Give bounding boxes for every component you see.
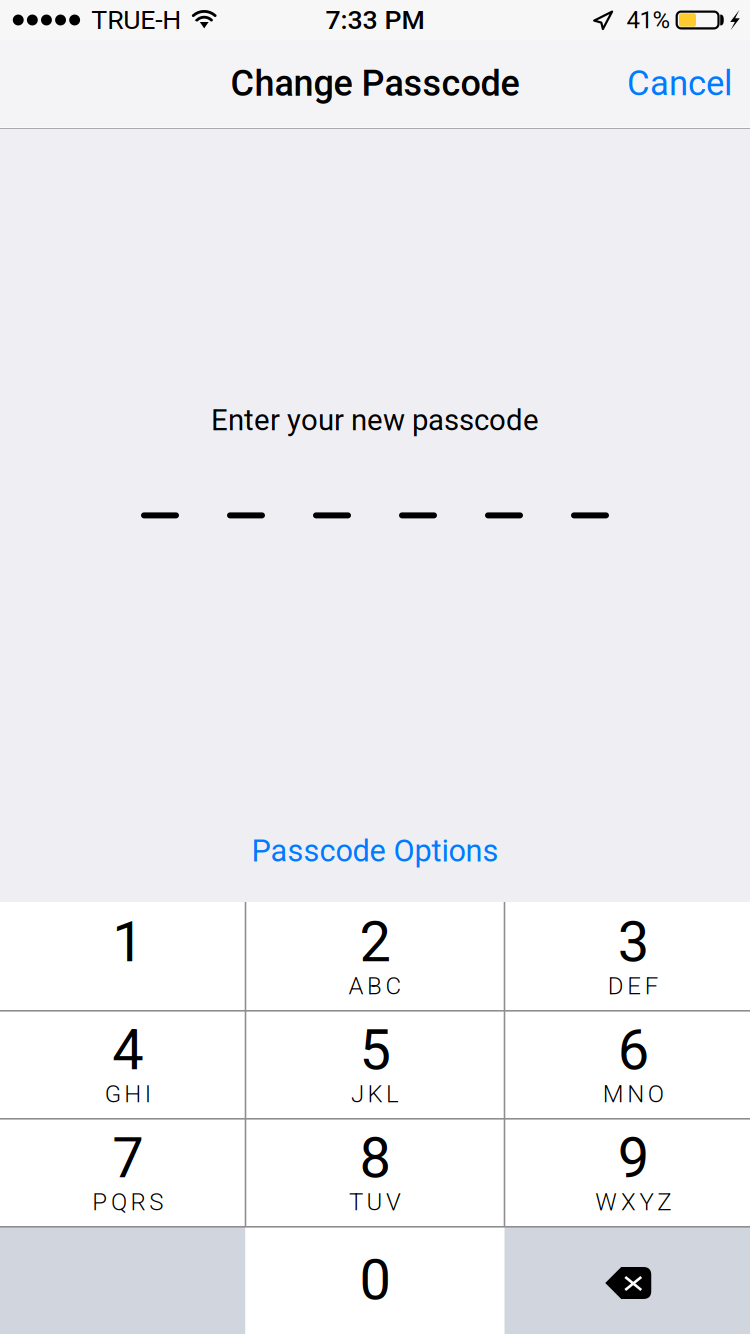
button[interactable]: Delete [504,1226,750,1334]
button[interactable]: 1 [0,902,245,1010]
staticText: R [131,1188,146,1216]
button[interactable]: 5 [245,1010,504,1118]
button[interactable]: 4 [0,1010,245,1118]
staticText: Z [657,1188,671,1216]
staticText: Q [111,1188,127,1216]
button[interactable]: 8 [245,1118,504,1226]
staticText: 8 [359,1125,390,1191]
staticText: Passcode Options [251,833,498,869]
staticText: S [149,1188,163,1216]
staticText: N [627,1080,644,1108]
staticText: 3 [618,909,649,975]
staticText: 41% [627,6,671,34]
staticText: D [608,972,624,1000]
staticText: Y [640,1188,654,1216]
button[interactable]: 2 [245,902,504,1010]
button[interactable]: 0 [245,1226,504,1334]
staticText: V [386,1188,401,1216]
staticText: G [105,1080,121,1108]
staticText: W [595,1188,617,1216]
staticText: 0 [359,1247,390,1313]
staticText: U [366,1188,382,1216]
staticText: Cancel [627,63,732,104]
staticText: Change Passcode [230,62,519,105]
staticText: H [124,1080,141,1108]
button[interactable]: Passcode Options [227,823,522,879]
button[interactable]: 6 [504,1010,750,1118]
staticText: F [645,972,659,1000]
staticText: 7 [112,1125,143,1191]
staticText: M [603,1080,624,1108]
staticText: 7:33 PM [325,4,424,36]
button[interactable]: 9 [504,1118,750,1226]
button[interactable]: 7 [0,1118,245,1226]
staticText: K [367,1080,382,1108]
staticText: TRUE-H [91,4,181,36]
staticText: 9 [618,1125,649,1191]
staticText: P [92,1188,107,1216]
staticText: 4 [112,1017,143,1083]
staticText: 6 [618,1017,649,1083]
staticText: T [349,1188,363,1216]
staticText: X [621,1188,636,1216]
staticText: J [351,1080,364,1108]
staticText: A [348,972,363,1000]
staticText: B [367,972,382,1000]
staticText: E [627,972,641,1000]
staticText: I [145,1080,151,1108]
staticText: 1 [112,909,143,975]
staticText: 2 [359,909,390,975]
staticText: L [386,1080,399,1108]
staticText: Enter your new passcode [211,403,539,437]
staticText: O [648,1080,664,1108]
button[interactable]: Cancel [609,53,750,114]
button[interactable]: 3 [504,902,750,1010]
staticText: 5 [359,1017,390,1083]
staticText: C [386,972,402,1000]
